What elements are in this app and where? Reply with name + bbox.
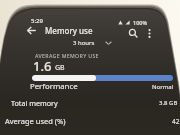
staticText: Normal (152, 83, 174, 91)
staticText: 5:29 (31, 17, 43, 25)
staticText: 3 hours (73, 39, 95, 47)
button[interactable]: Average used (%) (5, 116, 180, 126)
staticText: Average used (%) (5, 116, 66, 126)
button[interactable]: Search (128, 28, 139, 39)
staticText: GB (55, 63, 65, 73)
button[interactable]: More options (144, 28, 155, 39)
button[interactable]: Performance (30, 81, 174, 92)
staticText: 100% (133, 19, 148, 26)
button[interactable]: Back (26, 25, 37, 36)
staticText: Total memory (11, 98, 58, 108)
staticText: 3.8 GB (159, 99, 178, 107)
staticText: 42 (172, 117, 180, 126)
staticText: Performance (30, 81, 78, 92)
staticText: Memory use (45, 25, 93, 36)
staticText: AVERAGE MEMORY USE (35, 52, 99, 59)
staticText: 1.6 (33, 57, 52, 75)
button[interactable]: Total memory (11, 98, 178, 108)
button[interactable]: 3 hours (73, 39, 112, 47)
